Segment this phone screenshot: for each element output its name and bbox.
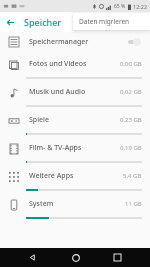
staticText: 65 % [114, 3, 126, 10]
button[interactable]: Speichermanager [0, 32, 150, 51]
staticText: 0,00 GB [120, 60, 142, 68]
staticText: 0,23 GB [120, 116, 142, 124]
staticText: Speichermanager [29, 37, 126, 47]
button[interactable]: System [0, 191, 150, 219]
staticText: Speicher [24, 16, 62, 28]
button[interactable]: Daten migrieren [73, 13, 150, 30]
button[interactable]: Startbildschirm [66, 248, 85, 267]
staticText: 11 GB [125, 200, 142, 208]
button[interactable]: Zuletzt verwendete Apps [108, 248, 127, 267]
staticText: 5,4 GB [123, 172, 142, 180]
button[interactable]: Spiele [0, 107, 150, 135]
staticText: Weitere Apps [29, 171, 123, 181]
staticText: 12:22 [133, 3, 148, 10]
staticText: Daten migrieren [79, 17, 130, 26]
staticText: Film- & TV-Apps [29, 143, 120, 153]
button[interactable]: Film- & TV-Apps [0, 135, 150, 163]
staticText: System [29, 199, 125, 209]
button[interactable]: Zurück [23, 248, 42, 267]
staticText: Spiele [29, 115, 120, 125]
staticText: Musik und Audio [29, 87, 120, 97]
button[interactable]: Musik und Audio [0, 79, 150, 107]
button[interactable]: Speichermanager umschalten [126, 37, 142, 47]
button[interactable]: Fotos und Videos [0, 51, 150, 79]
button[interactable]: Zurück [0, 12, 20, 32]
button[interactable]: Weitere Apps [0, 163, 150, 191]
staticText: 0,02 GB [120, 88, 142, 96]
staticText: 0,19 GB [120, 144, 142, 152]
staticText: Fotos und Videos [29, 59, 120, 69]
